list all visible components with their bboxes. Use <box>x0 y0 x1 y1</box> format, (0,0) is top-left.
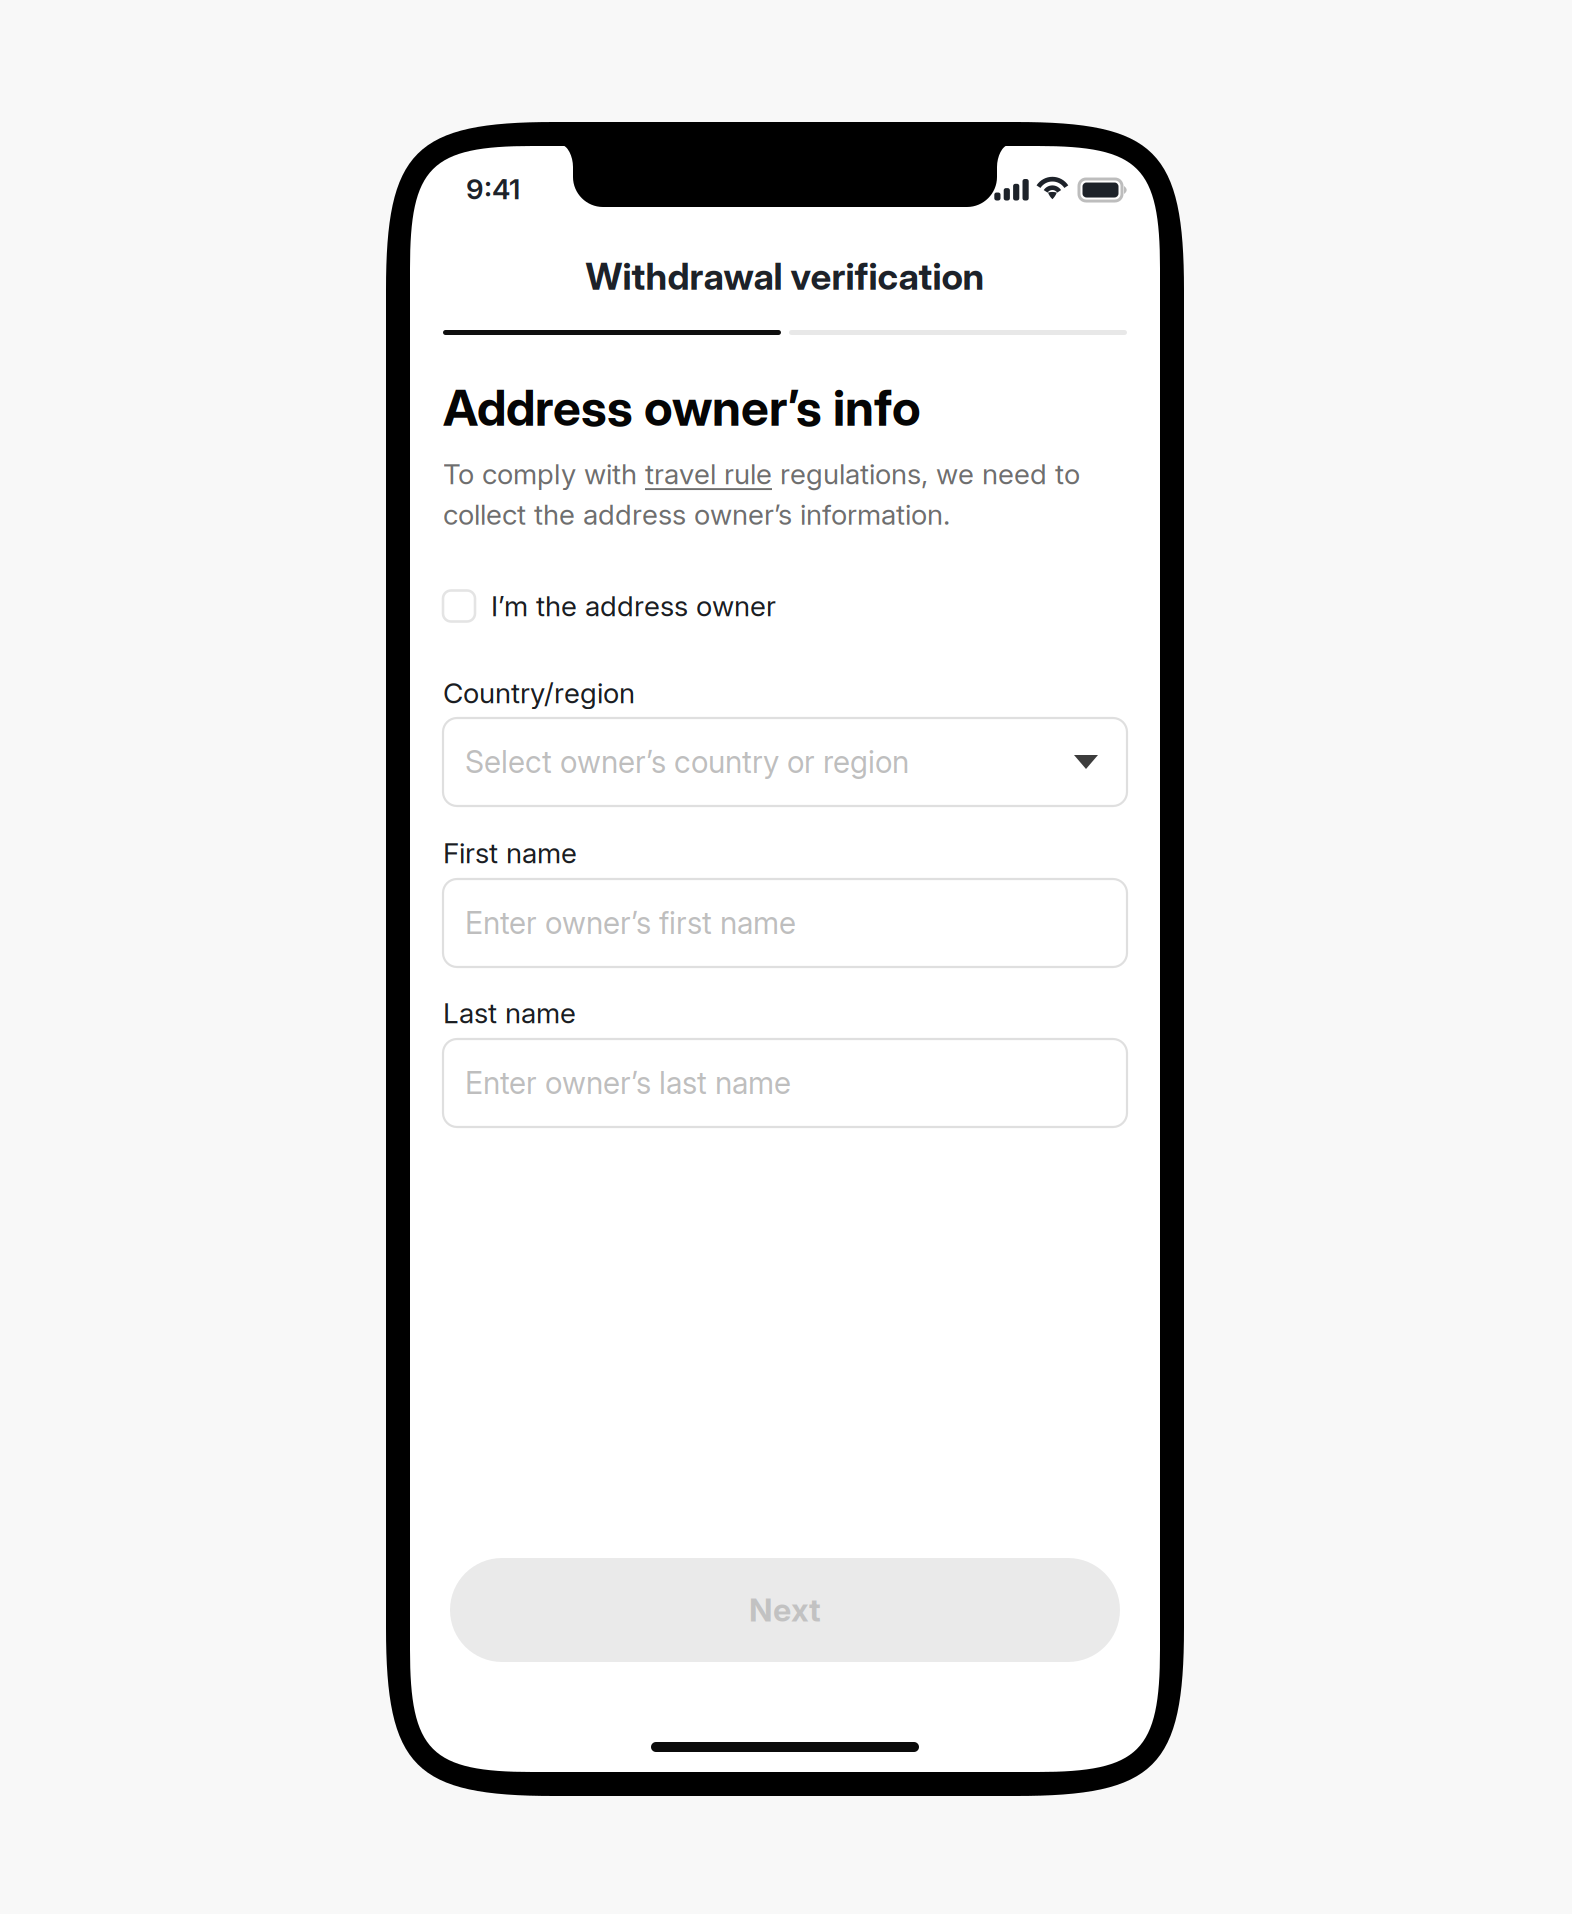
button[interactable]: Next <box>450 1558 1120 1662</box>
staticText: 9:41 <box>466 172 520 206</box>
staticText: Enter owner’s first name <box>465 905 796 941</box>
button[interactable]: Enter owner’s last name <box>443 1039 1127 1127</box>
staticText: I’m the address owner <box>491 589 776 623</box>
staticText: First name <box>443 836 577 870</box>
button[interactable]: I’m the address owner <box>443 590 843 622</box>
staticText: Select owner’s country or region <box>465 744 909 780</box>
staticText: To comply with travel rule regulations, … <box>443 457 1080 532</box>
staticText: Address owner’s info <box>443 378 921 438</box>
staticText: Country/region <box>443 676 635 710</box>
button[interactable]: Select owner’s country or region <box>443 718 1127 806</box>
staticText: Next <box>749 1591 821 1629</box>
staticText: Enter owner’s last name <box>465 1065 791 1101</box>
staticText: Withdrawal verification <box>585 254 984 299</box>
button[interactable]: Enter owner’s first name <box>443 879 1127 967</box>
staticText: Last name <box>443 996 576 1030</box>
